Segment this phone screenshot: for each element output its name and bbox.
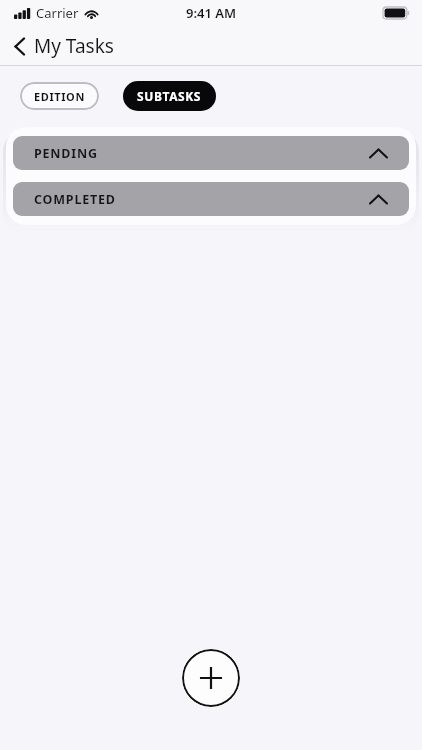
button[interactable]: EDITION — [20, 82, 99, 110]
staticText: Carrier — [36, 4, 79, 22]
button[interactable]: PENDING — [13, 136, 409, 170]
staticText: 9:41 AM — [186, 4, 237, 22]
staticText: SUBTASKS — [137, 88, 202, 104]
other: Back — [14, 37, 25, 56]
button[interactable]: Back — [10, 29, 118, 63]
staticText: COMPLETED — [34, 191, 369, 208]
staticText: PENDING — [34, 145, 369, 162]
staticText: EDITION — [34, 89, 85, 104]
other: Collapse COMPLETED — [369, 194, 388, 205]
button[interactable]: COMPLETED — [13, 182, 409, 216]
button[interactable]: Add task — [182, 649, 240, 707]
button[interactable]: SUBTASKS — [123, 81, 216, 111]
staticText: My Tasks — [34, 33, 114, 59]
other: Collapse PENDING — [369, 148, 388, 159]
